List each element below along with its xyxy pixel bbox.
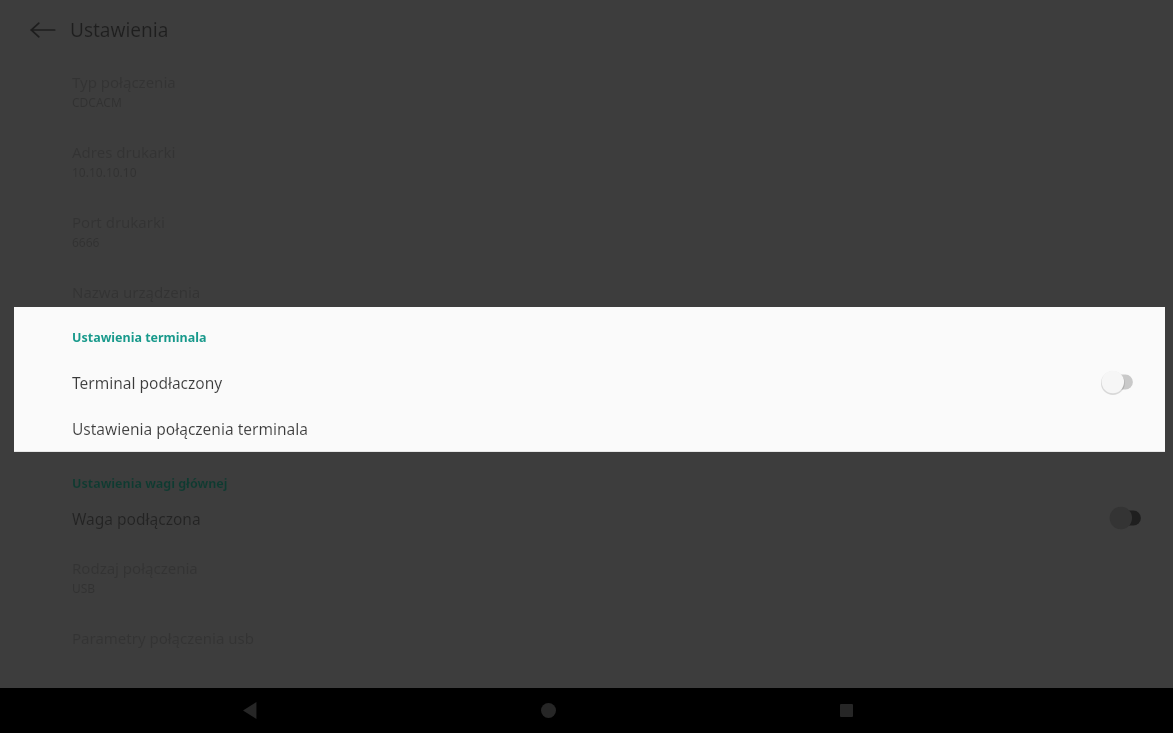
button[interactable]: Home <box>521 688 575 733</box>
button[interactable]: Back <box>18 5 68 55</box>
button[interactable]: Toggle <box>1105 505 1151 531</box>
staticText: CDCACM <box>72 94 122 110</box>
button[interactable]: Ustawienia połączenia terminala <box>14 406 1165 451</box>
staticText: Waga podłączona <box>72 508 1105 529</box>
button[interactable]: Terminal podłaczony <box>14 358 1165 406</box>
staticText: Ustawienia połączenia terminala <box>72 418 1143 439</box>
staticText: 10.10.10.10 <box>72 164 137 180</box>
staticText: 6666 <box>72 234 100 250</box>
staticText: Ustawienia <box>70 17 169 43</box>
staticText: USB <box>72 580 96 596</box>
button[interactable]: Back <box>223 688 277 733</box>
staticText: Ustawienia terminala <box>72 329 207 346</box>
staticText: Ustawienia wagi głównej <box>72 475 228 492</box>
button[interactable]: Toggle <box>1097 369 1143 395</box>
staticText: Typ połączenia <box>72 72 176 92</box>
button[interactable]: Recent apps <box>819 688 873 733</box>
staticText: Terminal podłaczony <box>72 372 1097 393</box>
